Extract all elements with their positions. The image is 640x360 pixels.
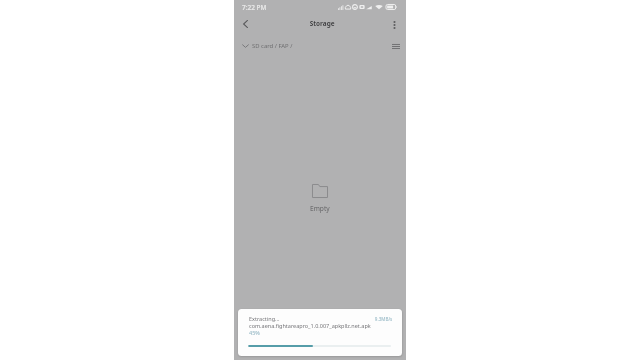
button[interactable]: SD card / FAP / [251,38,303,54]
staticText: 45% [249,329,260,336]
staticText: 9.3MB/s [375,315,393,322]
staticText: com.aena.fightareapro_1.0.007_apkpllz.ne… [249,322,371,329]
staticText: Extracting... [249,315,280,322]
button[interactable]: Collapse path [237,38,253,54]
staticText: 7:22 PM [242,3,267,13]
button[interactable]: Extracting... [238,309,402,356]
button[interactable]: Back [236,15,254,33]
button[interactable]: More options [385,16,403,34]
staticText: Empty [310,204,330,213]
button[interactable]: View options [388,38,404,54]
staticText: Storage [310,18,335,29]
staticText: SD card / FAP / [252,42,293,50]
